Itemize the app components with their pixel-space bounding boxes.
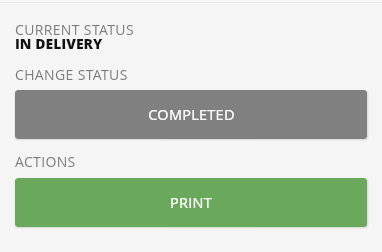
staticText: PRINT xyxy=(170,193,212,213)
button[interactable]: Print xyxy=(15,178,367,227)
button[interactable]: Change status to completed xyxy=(15,90,367,139)
staticText: COMPLETED xyxy=(148,105,235,125)
staticText: IN DELIVERY xyxy=(15,34,103,53)
staticText: CHANGE STATUS xyxy=(15,65,128,84)
staticText: ACTIONS xyxy=(15,152,76,171)
staticText: CURRENT STATUS xyxy=(15,20,134,39)
